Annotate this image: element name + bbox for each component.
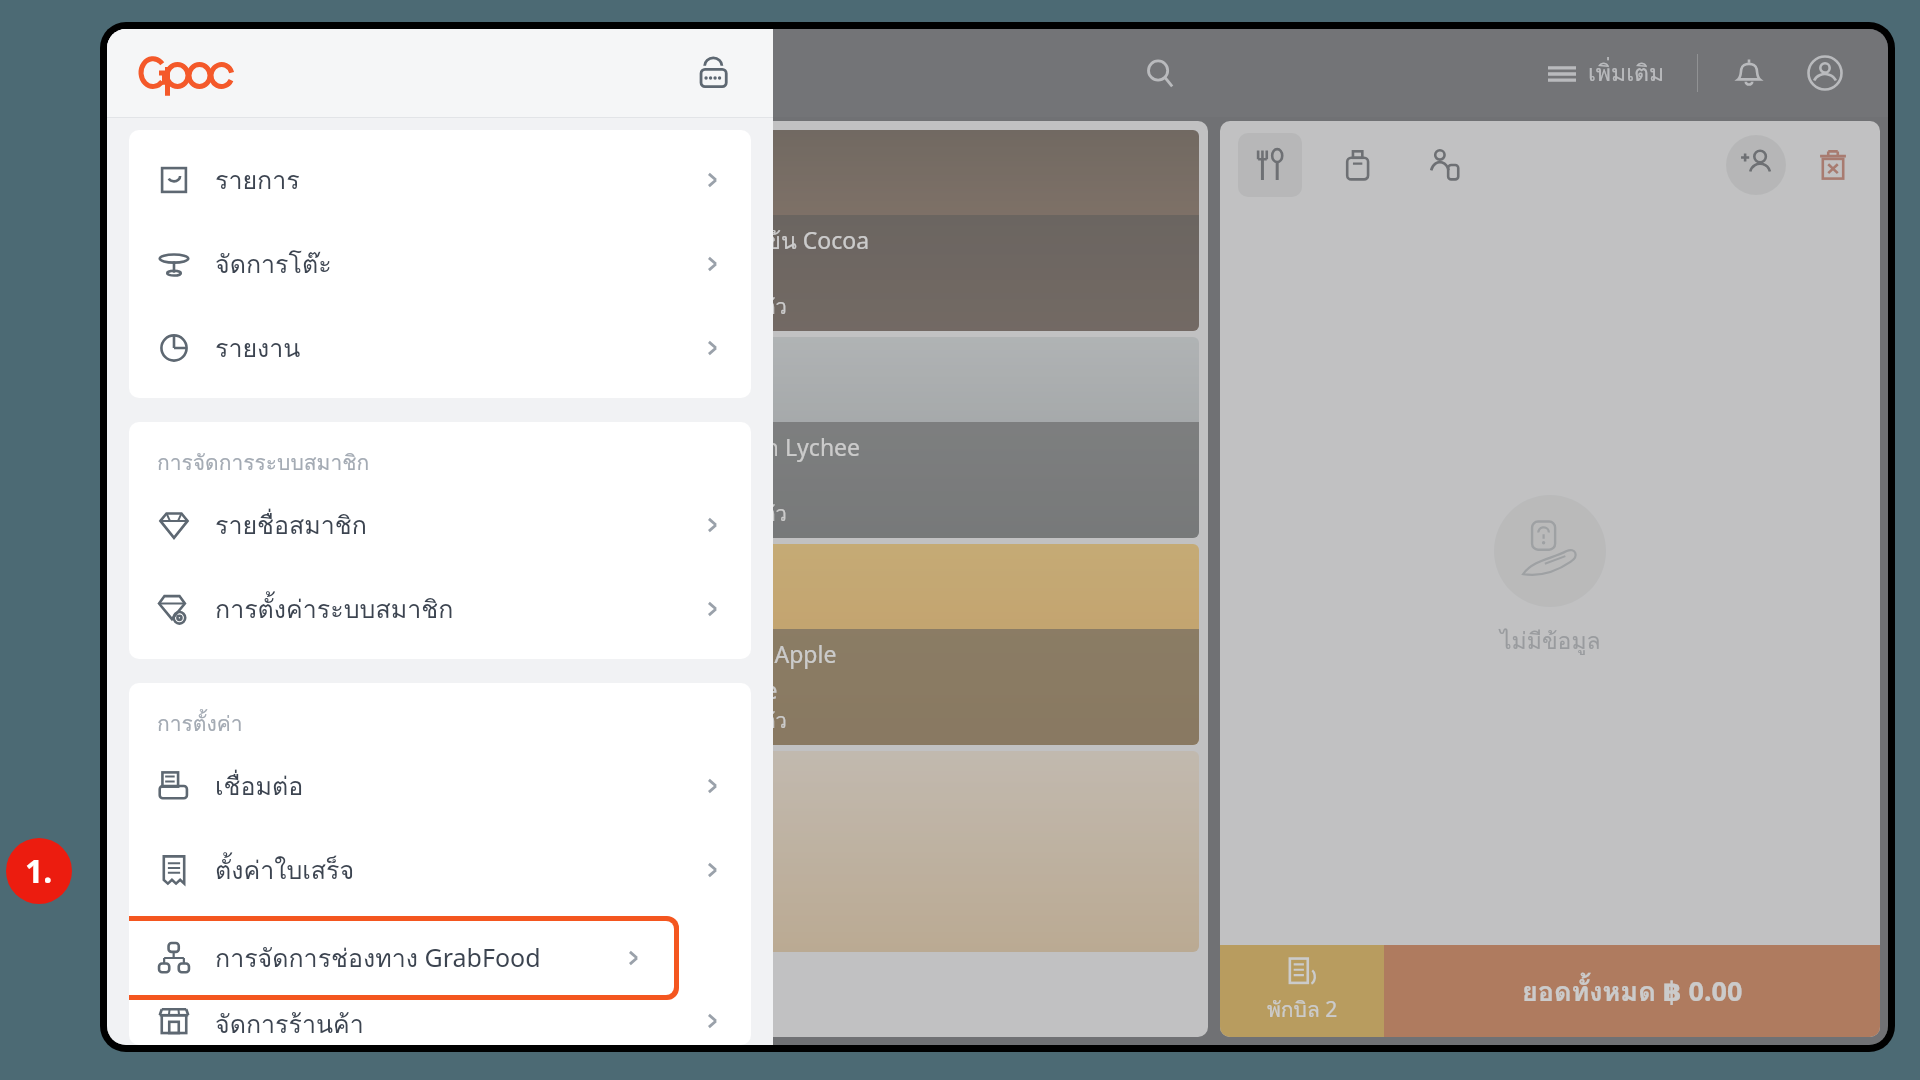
button[interactable]: มิกซ์เบอร์รี่ โซดา	[124, 544, 658, 745]
button[interactable]: การตั้งค่าระบบสมาชิก	[129, 567, 751, 651]
button[interactable]: Notifications	[1722, 46, 1776, 100]
button[interactable]: ส่วนลด/คูปอง	[115, 961, 1208, 1037]
button[interactable]: รายงาน	[129, 306, 751, 390]
staticText: ส่วนลด/คูปอง	[591, 980, 733, 1018]
button[interactable]: Delivery	[1414, 133, 1478, 197]
button[interactable]: รายชื่อสมาชิก	[129, 483, 751, 567]
staticText: เชื่อมต่อ	[215, 766, 304, 806]
staticText: การตั้งค่า	[157, 707, 243, 740]
staticText: ฿ 45.00/แก้ว	[134, 705, 247, 737]
staticText: การตั้งค่าระบบสมาชิก	[215, 589, 454, 629]
staticText: จัดการโต๊ะ	[215, 244, 332, 284]
button[interactable]	[124, 751, 658, 952]
staticText: การจัดการระบบสมาชิก	[157, 446, 370, 479]
button[interactable]: เชื่อมต่อ	[129, 744, 751, 828]
button[interactable]	[664, 751, 1199, 952]
staticText: ฿ 45.00/แก้ว	[674, 498, 787, 530]
button[interactable]: Clear order	[1804, 136, 1862, 194]
button[interactable]: Add customer	[1726, 135, 1786, 195]
staticText: Smoothie	[674, 674, 778, 705]
button[interactable]: Lock screen	[687, 46, 741, 100]
staticText: เพิ่มเติม	[1588, 55, 1665, 92]
staticText: Lemon Soda	[134, 467, 269, 498]
staticText: การจัดการช่องทาง GrabFood	[215, 938, 541, 978]
button[interactable]: Account	[1798, 46, 1852, 100]
staticText: Mixed Berry S...	[134, 674, 302, 705]
staticText: รายงาน	[215, 328, 301, 368]
button[interactable]: ยอดทั้งหมด ฿ 0.00	[1384, 945, 1880, 1037]
staticText: พักบิล 2	[1267, 993, 1338, 1026]
staticText: ฿ 45.00/แก้ว	[134, 498, 247, 530]
staticText: โกโก้เข้มข้น Cocoa	[674, 223, 870, 260]
button[interactable]: ลิ้นจี่ โซดา Lychee	[664, 337, 1199, 538]
staticText: รายชื่อสมาชิก	[215, 505, 367, 545]
button[interactable]: Take away	[1326, 133, 1390, 197]
staticText: ลิ้นจี่ โซดา Lychee	[674, 430, 861, 467]
button[interactable]: พักบิล 2	[1220, 945, 1384, 1037]
button[interactable]: เพิ่มเติม	[1540, 47, 1673, 100]
staticText: นมสด fresh milk	[134, 254, 307, 291]
staticText: รายการ	[215, 160, 300, 200]
staticText: ตั้งค่าใบเสร็จ	[215, 850, 355, 890]
button[interactable]: Search	[1132, 45, 1188, 101]
button[interactable]: นมสด fresh milk	[124, 130, 658, 331]
button[interactable]: ตั้งค่าใบเสร็จ	[129, 828, 751, 912]
button[interactable]: สมูทตี้ ส้ม Apple	[664, 544, 1199, 745]
staticText: ไม่มีข้อมูล	[1500, 623, 1601, 660]
button[interactable]: การจัดการช่องทาง GrabFood	[129, 921, 674, 995]
staticText: ฿ 65.00/แก้ว	[674, 705, 787, 737]
staticText: 1.	[25, 849, 53, 893]
button[interactable]: มะนาว โซดา	[124, 337, 658, 538]
staticText: Bliss	[674, 260, 723, 291]
button[interactable]: จัดการโต๊ะ	[129, 222, 751, 306]
staticText: มิกซ์เบอร์รี่ โซดา	[134, 637, 302, 674]
button[interactable]: โกโก้เข้มข้น Cocoa	[664, 130, 1199, 331]
staticText: มะนาว โซดา	[134, 430, 265, 467]
button[interactable]: รายการ	[129, 138, 751, 222]
button[interactable]: Dine in	[1238, 133, 1302, 197]
staticText: ยอดทั้งหมด ฿ 0.00	[1522, 970, 1743, 1013]
staticText: ฿ 55.00/แก้ว	[674, 291, 787, 323]
staticText: จัดการร้านค้า	[215, 1004, 364, 1037]
button[interactable]: จัดการร้านค้า	[129, 1004, 751, 1037]
staticText: สมูทตี้ ส้ม Apple	[674, 637, 837, 674]
